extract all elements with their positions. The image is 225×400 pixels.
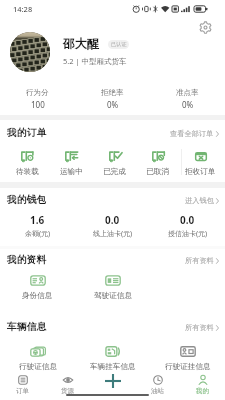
staticText: 车辆挂车信息: [90, 362, 136, 372]
staticText: 我的钱包: [7, 194, 47, 206]
staticText: 待装载: [16, 167, 39, 177]
staticText: 订单: [16, 387, 29, 395]
staticText: 行为分: [26, 88, 49, 97]
staticText: 行驶证信息: [19, 362, 57, 372]
button[interactable]: 所有资料: [185, 256, 219, 265]
button[interactable]: 我的: [180, 371, 225, 400]
staticText: 查看全部订单: [170, 129, 214, 138]
staticText: 驾驶证信息: [94, 291, 132, 301]
button[interactable]: 拒绝率: [75, 86, 150, 108]
staticText: 已认证: [111, 41, 127, 48]
button[interactable]: 1.6: [0, 213, 75, 239]
button[interactable]: 0.0: [150, 213, 225, 239]
staticText: 0.0: [180, 213, 195, 227]
button[interactable]: 进入钱包: [185, 196, 219, 205]
button[interactable]: 已完成: [93, 146, 136, 178]
button[interactable]: 行驶证挂信息: [150, 343, 225, 373]
staticText: 授信油卡(元): [168, 229, 208, 239]
button[interactable]: 查看全部订单: [170, 129, 219, 138]
staticText: 行驶证挂信息: [165, 362, 211, 372]
staticText: 准点率: [176, 88, 199, 97]
button[interactable]: 运输中: [49, 146, 93, 178]
staticText: 所有资料: [185, 323, 214, 332]
button[interactable]: 车辆挂车信息: [75, 343, 150, 373]
button[interactable]: 发布: [90, 371, 135, 400]
staticText: 余额(元): [25, 229, 51, 239]
staticText: 油站: [151, 387, 164, 395]
button[interactable]: 已认证: [108, 40, 129, 49]
staticText: 运输中: [60, 167, 83, 177]
button[interactable]: 准点率: [150, 86, 225, 108]
staticText: 已完成: [103, 167, 126, 177]
staticText: 0.0: [105, 213, 120, 227]
button[interactable]: 油站: [135, 371, 180, 400]
button[interactable]: 头像: [10, 32, 50, 72]
staticText: 5.2 | 中型厢式货车: [63, 56, 127, 66]
staticText: 14:28: [13, 4, 33, 14]
staticText: 拒收订单: [185, 167, 216, 177]
button[interactable]: 行驶证信息: [0, 343, 75, 373]
staticText: 1.6: [30, 213, 45, 227]
staticText: 拒绝率: [101, 88, 124, 97]
button[interactable]: 驾驶证信息: [75, 272, 150, 302]
staticText: 100: [31, 99, 45, 108]
staticText: 我的资料: [7, 254, 47, 266]
button[interactable]: 行为分: [0, 86, 75, 108]
staticText: 我的订单: [7, 127, 47, 139]
button[interactable]: 拒收订单: [179, 146, 222, 178]
staticText: 邵大醒: [63, 36, 99, 51]
staticText: 身份信息: [22, 291, 53, 301]
staticText: 所有资料: [185, 256, 214, 265]
button[interactable]: 订单: [0, 371, 45, 400]
staticText: 货源: [61, 387, 74, 395]
button[interactable]: 已取消: [136, 146, 179, 178]
button[interactable]: 0.0: [75, 213, 150, 239]
staticText: 线上油卡(元): [93, 229, 133, 239]
button[interactable]: 身份信息: [0, 272, 75, 302]
button[interactable]: 设置: [195, 17, 215, 37]
staticText: 车辆信息: [7, 321, 47, 333]
button[interactable]: 待装载: [5, 146, 49, 178]
button[interactable]: 货源: [45, 371, 90, 400]
staticText: 我的: [196, 387, 209, 395]
staticText: 进入钱包: [185, 196, 214, 205]
staticText: 0%: [107, 99, 119, 108]
button[interactable]: 所有资料: [185, 323, 219, 332]
staticText: 0%: [182, 99, 194, 108]
staticText: 已取消: [146, 167, 169, 177]
